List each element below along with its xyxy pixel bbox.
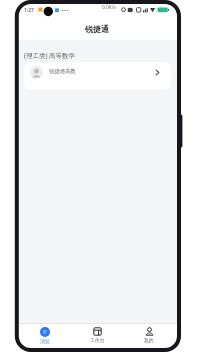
staticText: 我的 [144, 337, 154, 343]
staticText: 1:27 [24, 7, 34, 14]
staticText: 锐捷通 [85, 24, 109, 34]
staticText: 消息 [40, 338, 50, 344]
button[interactable]: 锐捷通高数 [24, 62, 171, 90]
staticText: 0.0K/s [102, 4, 116, 11]
button[interactable]: 我的 [123, 323, 175, 351]
button[interactable]: 消息 [18, 323, 71, 351]
staticText: 锐捷通高数 [49, 68, 76, 75]
button[interactable]: 工作台 [71, 323, 123, 351]
staticText: 工作台 [90, 337, 105, 343]
staticText: (理工类) 高等数学 [24, 51, 76, 60]
